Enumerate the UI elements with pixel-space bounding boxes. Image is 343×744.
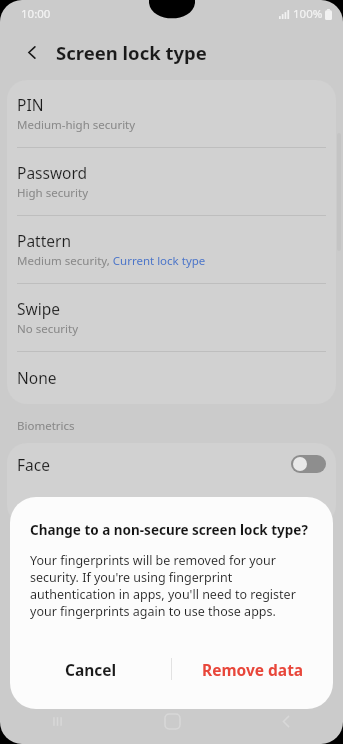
staticText: Biometrics	[17, 418, 75, 434]
button[interactable]: PIN	[7, 80, 336, 147]
button[interactable]: Swipe	[7, 284, 336, 351]
button[interactable]: Face	[7, 443, 336, 485]
staticText: 100%	[293, 6, 323, 22]
button[interactable]: Cancel	[10, 646, 171, 692]
staticText: Change to a non-secure screen lock type?	[30, 521, 308, 539]
button[interactable]: Back	[17, 37, 47, 67]
staticText: Pattern	[17, 230, 71, 251]
staticText: Face	[17, 454, 291, 475]
button[interactable]: Back	[229, 698, 343, 744]
staticText: None	[17, 367, 57, 388]
button[interactable]: Recents	[0, 698, 115, 744]
button[interactable]: Pattern	[7, 216, 336, 283]
staticText: Your fingerprints will be removed for yo…	[30, 552, 313, 620]
staticText: Medium security, Current lock type	[17, 253, 206, 269]
staticText: Medium-high security	[17, 117, 136, 133]
staticText: No security	[17, 321, 79, 337]
button[interactable]: Remove data	[172, 646, 333, 692]
staticText: Password	[17, 162, 88, 183]
button[interactable]: None	[7, 352, 336, 404]
staticText: High security	[17, 185, 89, 201]
button[interactable]: Home	[115, 698, 229, 744]
staticText: Swipe	[17, 298, 60, 319]
staticText: Cancel	[65, 659, 117, 680]
button[interactable]: Password	[7, 148, 336, 215]
button[interactable]: Face toggle	[291, 455, 326, 473]
staticText: 10:00	[21, 6, 51, 22]
staticText: PIN	[17, 94, 44, 115]
staticText: Remove data	[202, 659, 304, 680]
staticText: Screen lock type	[56, 40, 207, 65]
